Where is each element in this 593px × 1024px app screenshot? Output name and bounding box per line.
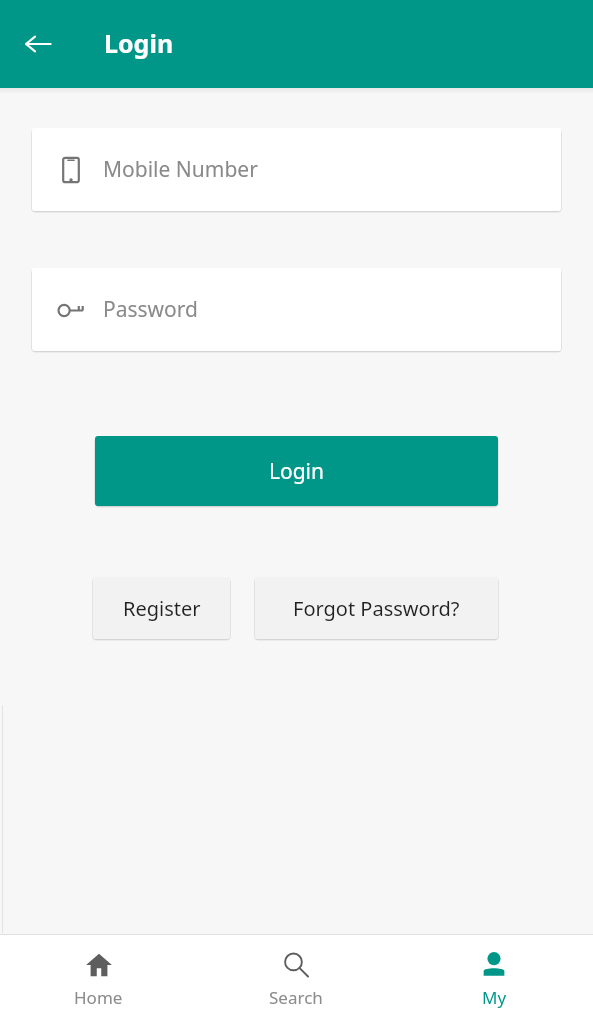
- staticText: Home: [74, 986, 123, 1009]
- button[interactable]: Password: [32, 268, 561, 351]
- staticText: My: [482, 986, 507, 1009]
- button[interactable]: Register: [93, 577, 230, 639]
- staticText: Login: [269, 457, 325, 486]
- button[interactable]: Home: [0, 934, 197, 1024]
- button[interactable]: Forgot Password?: [255, 577, 498, 639]
- button[interactable]: Mobile Number: [32, 128, 561, 211]
- staticText: Login: [104, 26, 174, 60]
- staticText: Mobile Number: [103, 155, 258, 184]
- staticText: Password: [103, 295, 198, 324]
- staticText: Forgot Password?: [293, 595, 460, 622]
- button[interactable]: Login: [95, 436, 498, 506]
- staticText: Register: [123, 595, 201, 622]
- staticText: Search: [269, 986, 323, 1009]
- button[interactable]: Back: [10, 16, 66, 72]
- button[interactable]: Search: [197, 934, 395, 1024]
- button[interactable]: My: [395, 934, 593, 1024]
